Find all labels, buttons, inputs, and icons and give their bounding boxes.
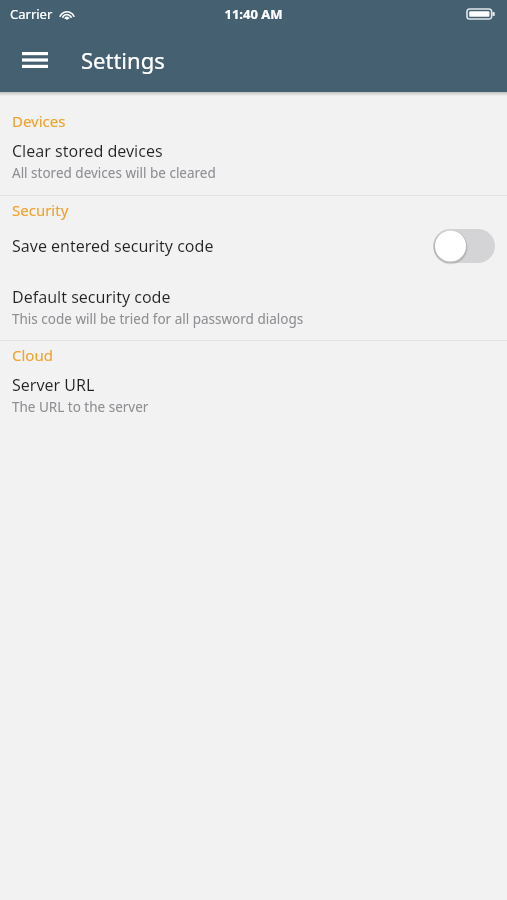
button[interactable]: Default security code	[0, 279, 507, 330]
staticText: 11:40 AM	[224, 5, 283, 23]
staticText: Carrier	[10, 5, 53, 23]
button[interactable]: Clear stored devices	[0, 133, 507, 184]
button[interactable]: Save entered security code	[0, 222, 507, 270]
staticText: This code will be tried for all password…	[12, 310, 304, 328]
staticText: Security	[12, 200, 69, 220]
staticText: Save entered security code	[12, 235, 433, 257]
staticText: Devices	[12, 111, 66, 131]
staticText: Settings	[81, 45, 165, 75]
staticText: Server URL	[12, 374, 95, 396]
button[interactable]: Open navigation menu	[10, 35, 60, 85]
staticText: The URL to the server	[12, 398, 149, 416]
staticText: Clear stored devices	[12, 140, 163, 162]
button[interactable]: Server URL	[0, 367, 507, 418]
staticText: All stored devices will be cleared	[12, 164, 216, 182]
staticText: Default security code	[12, 286, 171, 308]
staticText: Cloud	[12, 345, 53, 365]
